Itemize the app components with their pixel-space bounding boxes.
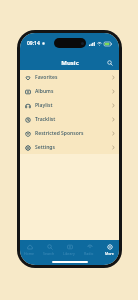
staticText: Library [63, 251, 75, 256]
button[interactable]: Library [59, 240, 79, 258]
button[interactable]: Albums [20, 84, 119, 98]
button[interactable]: Home [20, 240, 39, 258]
staticText: Playlist [35, 102, 112, 109]
button[interactable]: Radio [79, 240, 99, 258]
button[interactable]: Settings [20, 140, 119, 154]
staticText: Tracklist [35, 116, 112, 123]
staticText: Settings [35, 144, 112, 151]
button[interactable]: More [99, 240, 119, 258]
staticText: Albums [35, 88, 112, 95]
staticText: Music [61, 59, 79, 67]
staticText: Search [43, 251, 55, 256]
button[interactable]: Favorites [20, 70, 119, 84]
button[interactable]: Search [105, 58, 115, 68]
staticText: Restricted Sponsors [35, 130, 112, 137]
button[interactable]: Playlist [20, 98, 119, 112]
staticText: Home [24, 251, 35, 256]
button[interactable]: Tracklist [20, 112, 119, 126]
staticText: Radio [84, 251, 94, 256]
staticText: 09:14 [27, 40, 40, 47]
button[interactable]: Search [39, 240, 59, 258]
staticText: More [105, 251, 114, 256]
staticText: Favorites [35, 74, 112, 81]
button[interactable]: Restricted Sponsors [20, 126, 119, 140]
